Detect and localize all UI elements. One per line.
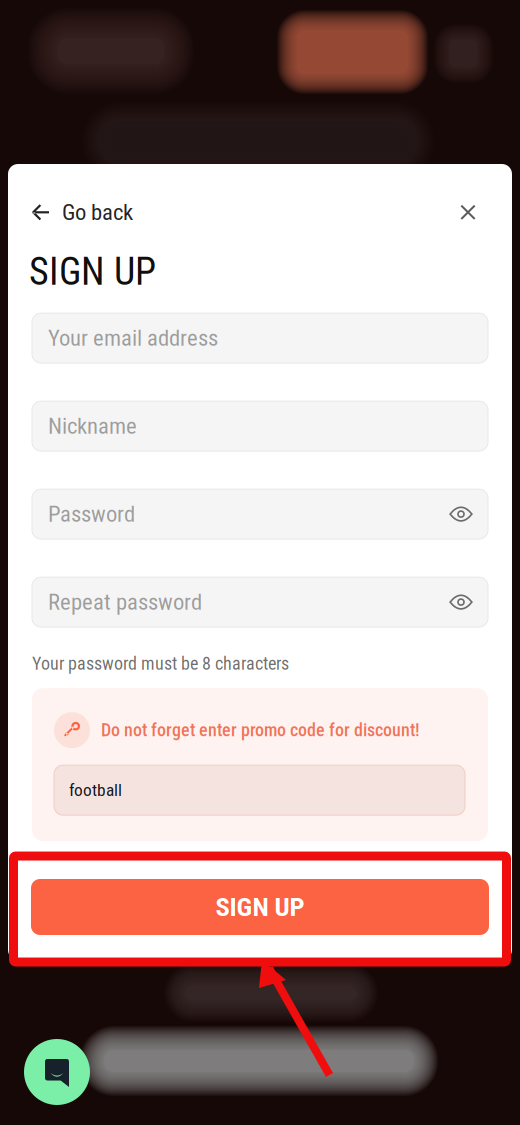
staticText: SIGN UP [29,250,156,294]
button[interactable]: Go back [32,194,139,231]
staticText: football [69,780,122,800]
button[interactable]: Nickname [32,401,488,451]
button[interactable]: Repeat password [32,577,488,627]
staticText: Nickname [48,413,137,439]
staticText: Go back [62,199,133,226]
button[interactable]: Password [32,489,488,539]
staticText: Repeat password [48,589,202,615]
button[interactable]: SIGN UP [31,879,489,935]
staticText: Do not forget enter promo code for disco… [101,720,420,741]
staticText: Your email address [48,325,218,351]
button[interactable]: Open chat [24,1039,90,1105]
staticText: Your password must be 8 characters [32,653,289,674]
button[interactable]: Your email address [32,313,488,363]
button[interactable]: Close [453,198,483,226]
staticText: Password [48,501,135,527]
staticText: SIGN UP [215,891,304,923]
button[interactable]: football [54,765,465,815]
